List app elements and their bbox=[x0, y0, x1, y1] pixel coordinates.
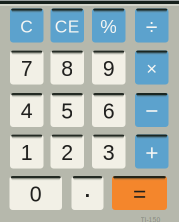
staticText: 7 bbox=[21, 57, 33, 80]
button[interactable]: 1 bbox=[10, 134, 43, 168]
staticText: − bbox=[145, 98, 158, 124]
button[interactable]: ÷ bbox=[135, 8, 168, 42]
staticText: % bbox=[100, 16, 117, 37]
button[interactable]: · bbox=[71, 176, 103, 210]
staticText: 1 bbox=[21, 141, 33, 164]
staticText: 5 bbox=[61, 99, 73, 123]
staticText: + bbox=[145, 140, 158, 165]
button[interactable]: 2 bbox=[50, 134, 84, 168]
staticText: 9 bbox=[103, 57, 115, 80]
button[interactable]: 9 bbox=[92, 50, 125, 84]
staticText: 2 bbox=[61, 141, 73, 164]
staticText: · bbox=[82, 177, 92, 209]
staticText: C bbox=[20, 17, 33, 36]
staticText: 4 bbox=[21, 99, 33, 123]
staticText: 6 bbox=[103, 99, 115, 123]
staticText: = bbox=[133, 181, 146, 207]
button[interactable]: CE bbox=[50, 8, 84, 42]
button[interactable]: 3 bbox=[92, 134, 125, 168]
staticText: ÷ bbox=[146, 15, 158, 38]
staticText: 0 bbox=[30, 182, 42, 206]
button[interactable]: + bbox=[135, 134, 168, 168]
staticText: × bbox=[146, 58, 157, 79]
button[interactable]: 6 bbox=[92, 93, 125, 127]
staticText: CE bbox=[55, 17, 80, 36]
button[interactable]: 0 bbox=[9, 176, 62, 210]
staticText: 3 bbox=[103, 141, 115, 164]
button[interactable]: 5 bbox=[50, 93, 84, 127]
button[interactable]: 8 bbox=[50, 50, 84, 84]
button[interactable]: % bbox=[92, 8, 125, 42]
staticText: TI-150 bbox=[140, 216, 160, 222]
button[interactable]: 7 bbox=[10, 50, 43, 84]
button[interactable]: × bbox=[135, 50, 168, 84]
button[interactable]: 4 bbox=[10, 93, 43, 127]
button[interactable]: C bbox=[10, 8, 43, 42]
staticText: 8 bbox=[61, 57, 73, 80]
button[interactable]: − bbox=[135, 93, 168, 127]
button[interactable]: = bbox=[112, 176, 167, 210]
